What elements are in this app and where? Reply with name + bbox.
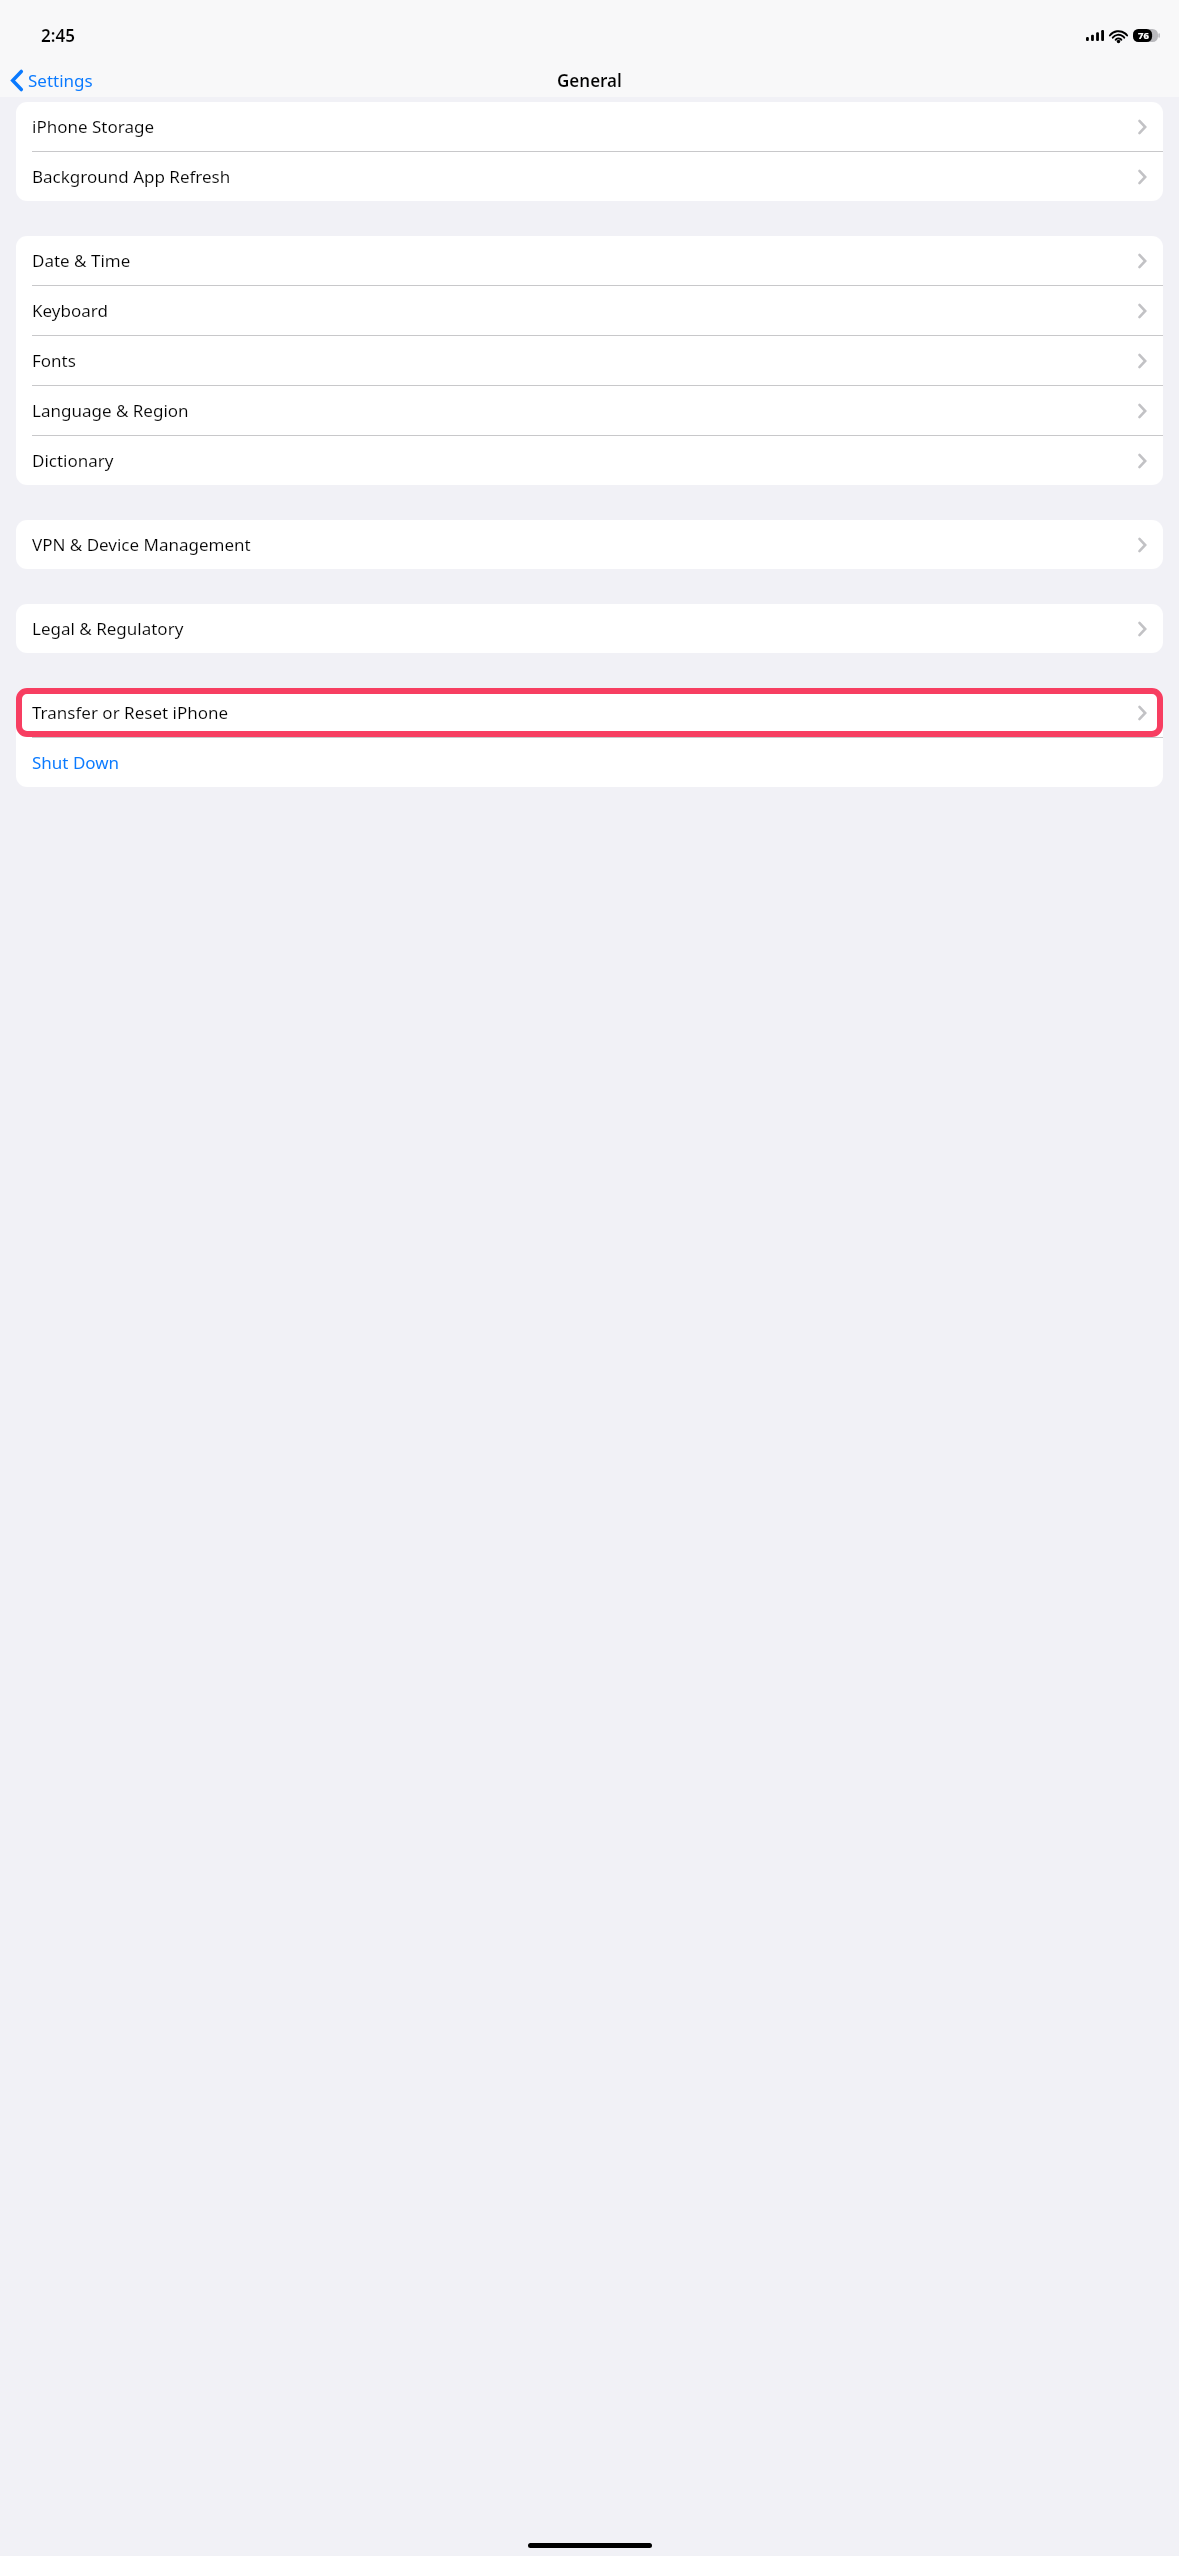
staticText: Date & Time bbox=[32, 249, 131, 272]
staticText: 76 bbox=[1138, 29, 1149, 42]
staticText: Shut Down bbox=[32, 751, 120, 774]
button[interactable]: Settings bbox=[0, 66, 103, 95]
staticText: General bbox=[557, 69, 622, 92]
staticText: Fonts bbox=[32, 349, 76, 372]
staticText: Keyboard bbox=[32, 299, 108, 322]
staticText: Transfer or Reset iPhone bbox=[32, 701, 229, 724]
button[interactable]: Shut Down bbox=[16, 738, 1163, 787]
staticText: Dictionary bbox=[32, 449, 114, 472]
staticText: Language & Region bbox=[32, 399, 189, 422]
staticText: VPN & Device Management bbox=[32, 533, 251, 556]
staticText: 2:45 bbox=[41, 24, 75, 47]
button[interactable]: Legal & Regulatory bbox=[16, 604, 1163, 653]
staticText: Settings bbox=[28, 69, 93, 92]
button[interactable]: Dictionary bbox=[16, 436, 1163, 485]
button[interactable]: Date & Time bbox=[16, 236, 1163, 285]
button[interactable]: Background App Refresh bbox=[16, 152, 1163, 201]
button[interactable]: Keyboard bbox=[16, 286, 1163, 335]
button[interactable]: Language & Region bbox=[16, 386, 1163, 435]
button[interactable]: iPhone Storage bbox=[16, 102, 1163, 151]
button[interactable]: Fonts bbox=[16, 336, 1163, 385]
staticText: Background App Refresh bbox=[32, 165, 231, 188]
staticText: iPhone Storage bbox=[32, 115, 154, 138]
button[interactable]: Transfer or Reset iPhone bbox=[16, 688, 1163, 737]
staticText: Legal & Regulatory bbox=[32, 617, 184, 640]
button[interactable]: VPN & Device Management bbox=[16, 520, 1163, 569]
